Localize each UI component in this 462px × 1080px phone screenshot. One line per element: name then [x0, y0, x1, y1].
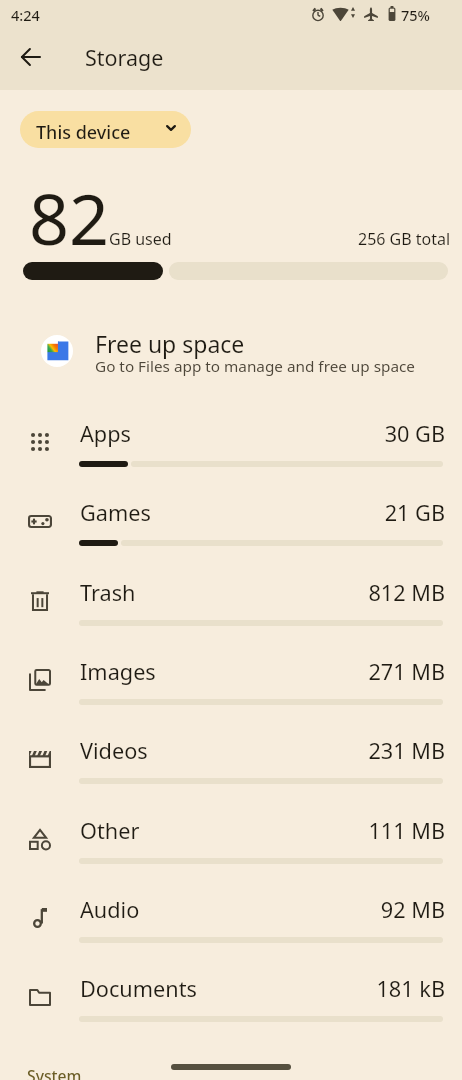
button[interactable]: Other: [0, 797, 462, 876]
staticText: Images: [80, 657, 156, 687]
button[interactable]: Apps: [0, 400, 462, 479]
staticText: This device: [36, 120, 131, 145]
staticText: 271 MB: [0, 657, 445, 687]
staticText: Apps: [80, 419, 131, 449]
button[interactable]: Free up space: [0, 316, 462, 386]
staticText: 181 kB: [0, 974, 445, 1004]
staticText: GB used: [109, 228, 172, 250]
staticText: Go to Files app to manage and free up sp…: [95, 356, 415, 377]
staticText: Documents: [80, 974, 197, 1004]
staticText: Storage: [85, 43, 164, 72]
staticText: Free up space: [95, 328, 245, 359]
staticText: Trash: [80, 578, 136, 608]
button[interactable]: Back: [6, 33, 54, 81]
button[interactable]: Videos: [0, 717, 462, 796]
button[interactable]: Audio: [0, 876, 462, 955]
button[interactable]: Trash: [0, 559, 462, 638]
button[interactable]: Games: [0, 479, 462, 558]
staticText: 111 MB: [0, 816, 445, 846]
staticText: Games: [80, 498, 151, 528]
staticText: 231 MB: [0, 736, 445, 766]
staticText: 92 MB: [0, 895, 445, 925]
button[interactable]: Images: [0, 638, 462, 717]
staticText: 4:24: [11, 5, 40, 25]
button[interactable]: This device: [20, 111, 191, 148]
staticText: 75%: [401, 5, 430, 25]
staticText: 256 GB total: [358, 228, 451, 250]
staticText: Videos: [80, 736, 148, 766]
staticText: 82: [29, 170, 110, 265]
button[interactable]: Documents: [0, 955, 462, 1034]
staticText: 30 GB: [0, 419, 445, 449]
staticText: Audio: [80, 895, 140, 925]
staticText: 812 MB: [0, 578, 445, 608]
staticText: System: [27, 1065, 82, 1080]
staticText: 21 GB: [0, 498, 445, 528]
staticText: Other: [80, 816, 140, 846]
